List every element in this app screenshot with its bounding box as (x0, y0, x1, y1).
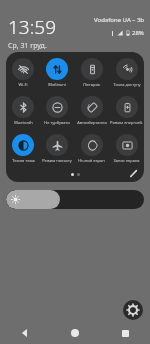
button[interactable]: Edit tiles (126, 166, 140, 180)
staticText: Ср, 31 груд. (8, 41, 47, 51)
staticText: 28% (132, 29, 144, 37)
button[interactable]: Режим польоту (40, 134, 74, 163)
staticText: 13:59 (8, 14, 57, 40)
staticText: Запис екрана (113, 158, 140, 163)
button[interactable]: Back (0, 322, 50, 344)
button[interactable]: Нічний екран (74, 134, 109, 163)
button[interactable]: Brightness (6, 190, 144, 209)
button[interactable]: Мобільні передачі (40, 58, 74, 87)
button[interactable]: Запис екрана (109, 134, 144, 163)
button[interactable]: Recents (100, 322, 150, 344)
staticText: Точка доступу (113, 82, 141, 87)
staticText: Нічний екран (78, 158, 105, 163)
button[interactable]: Режим енергозб. (109, 96, 144, 125)
button[interactable]: Точка доступу (109, 58, 144, 87)
button[interactable]: Автообертання (74, 96, 109, 125)
staticText: Не турбувати (44, 120, 70, 125)
button[interactable]: Темна тема (6, 134, 40, 163)
staticText: Автообертання (77, 120, 107, 125)
button[interactable]: Settings (123, 300, 143, 320)
staticText: Ліхтарик (83, 82, 100, 87)
staticText: Мобільні передачі (40, 82, 74, 87)
staticText: Wi-Fi (18, 82, 28, 87)
button[interactable]: Bluetooth (6, 96, 40, 125)
button[interactable]: Wi-Fi (6, 58, 40, 87)
button[interactable]: Не турбувати (40, 96, 74, 125)
button[interactable]: Home (50, 322, 100, 344)
staticText: Vodafone UA – 3b (94, 16, 144, 24)
staticText: Bluetooth (14, 120, 33, 125)
button[interactable]: Ліхтарик (74, 58, 109, 87)
staticText: Режим енергозб. (110, 120, 143, 125)
staticText: Темна тема (12, 158, 35, 163)
staticText: Режим польоту (42, 158, 72, 163)
